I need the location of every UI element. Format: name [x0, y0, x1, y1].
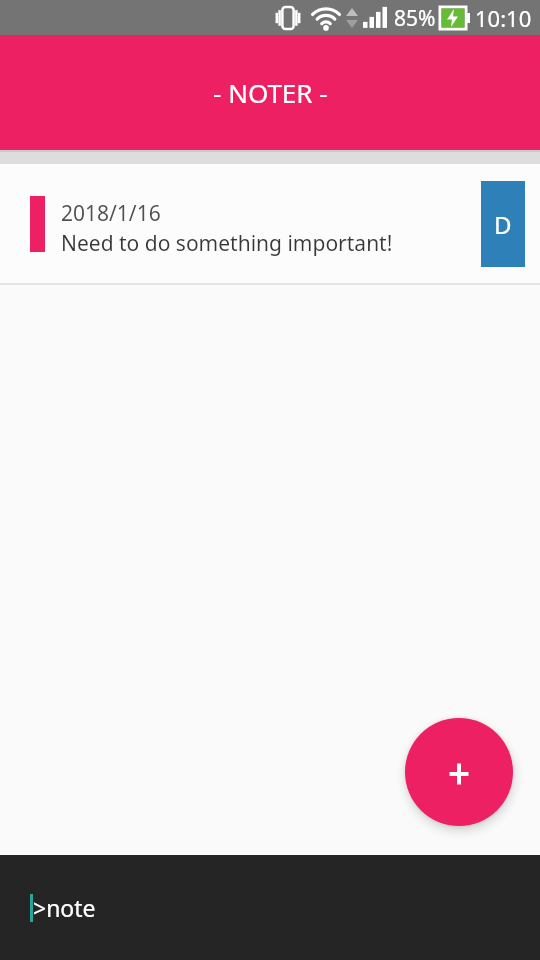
staticText: Need to do something important! — [61, 229, 393, 258]
staticText: - NOTER - — [213, 75, 328, 110]
button[interactable]: D — [481, 181, 525, 267]
staticText: 2018/1/16 — [61, 199, 161, 228]
staticText: >note — [33, 892, 96, 923]
button[interactable] — [405, 718, 513, 826]
staticText: D — [494, 208, 512, 241]
staticText: 85% — [394, 4, 436, 33]
button[interactable]: >note — [30, 892, 96, 923]
staticText: 10:10 — [475, 3, 532, 33]
button[interactable]: 2018/1/16 — [0, 164, 540, 283]
